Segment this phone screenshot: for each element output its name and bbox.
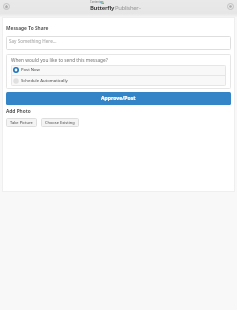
button[interactable]: Take Picture (6, 118, 37, 127)
staticText: Message To Share (6, 25, 49, 32)
button[interactable]: Post Now (11, 65, 226, 75)
staticText: Choose Existing (45, 120, 75, 125)
staticText: Add Photo (6, 108, 31, 115)
staticText: Approve/Post (101, 95, 136, 102)
button[interactable]: Home (1, 1, 12, 12)
staticText: Schedule Automatically (21, 78, 68, 84)
button[interactable]: Approve/Post (6, 92, 231, 105)
staticText: When would you like to send this message… (11, 57, 108, 63)
staticText: Publisher (115, 4, 139, 12)
button[interactable]: Settings (225, 1, 236, 12)
staticText: Butterfly (90, 4, 115, 12)
button[interactable]: Schedule Automatically (11, 76, 226, 86)
staticText: Content (90, 0, 100, 4)
button[interactable]: Choose Existing (41, 118, 79, 127)
staticText: Post Now (21, 67, 40, 73)
button[interactable]: Say Something Here... (6, 36, 231, 50)
staticText: Say Something Here... (9, 38, 57, 44)
staticText: Take Picture (10, 120, 33, 125)
staticText: ™ (139, 7, 141, 10)
